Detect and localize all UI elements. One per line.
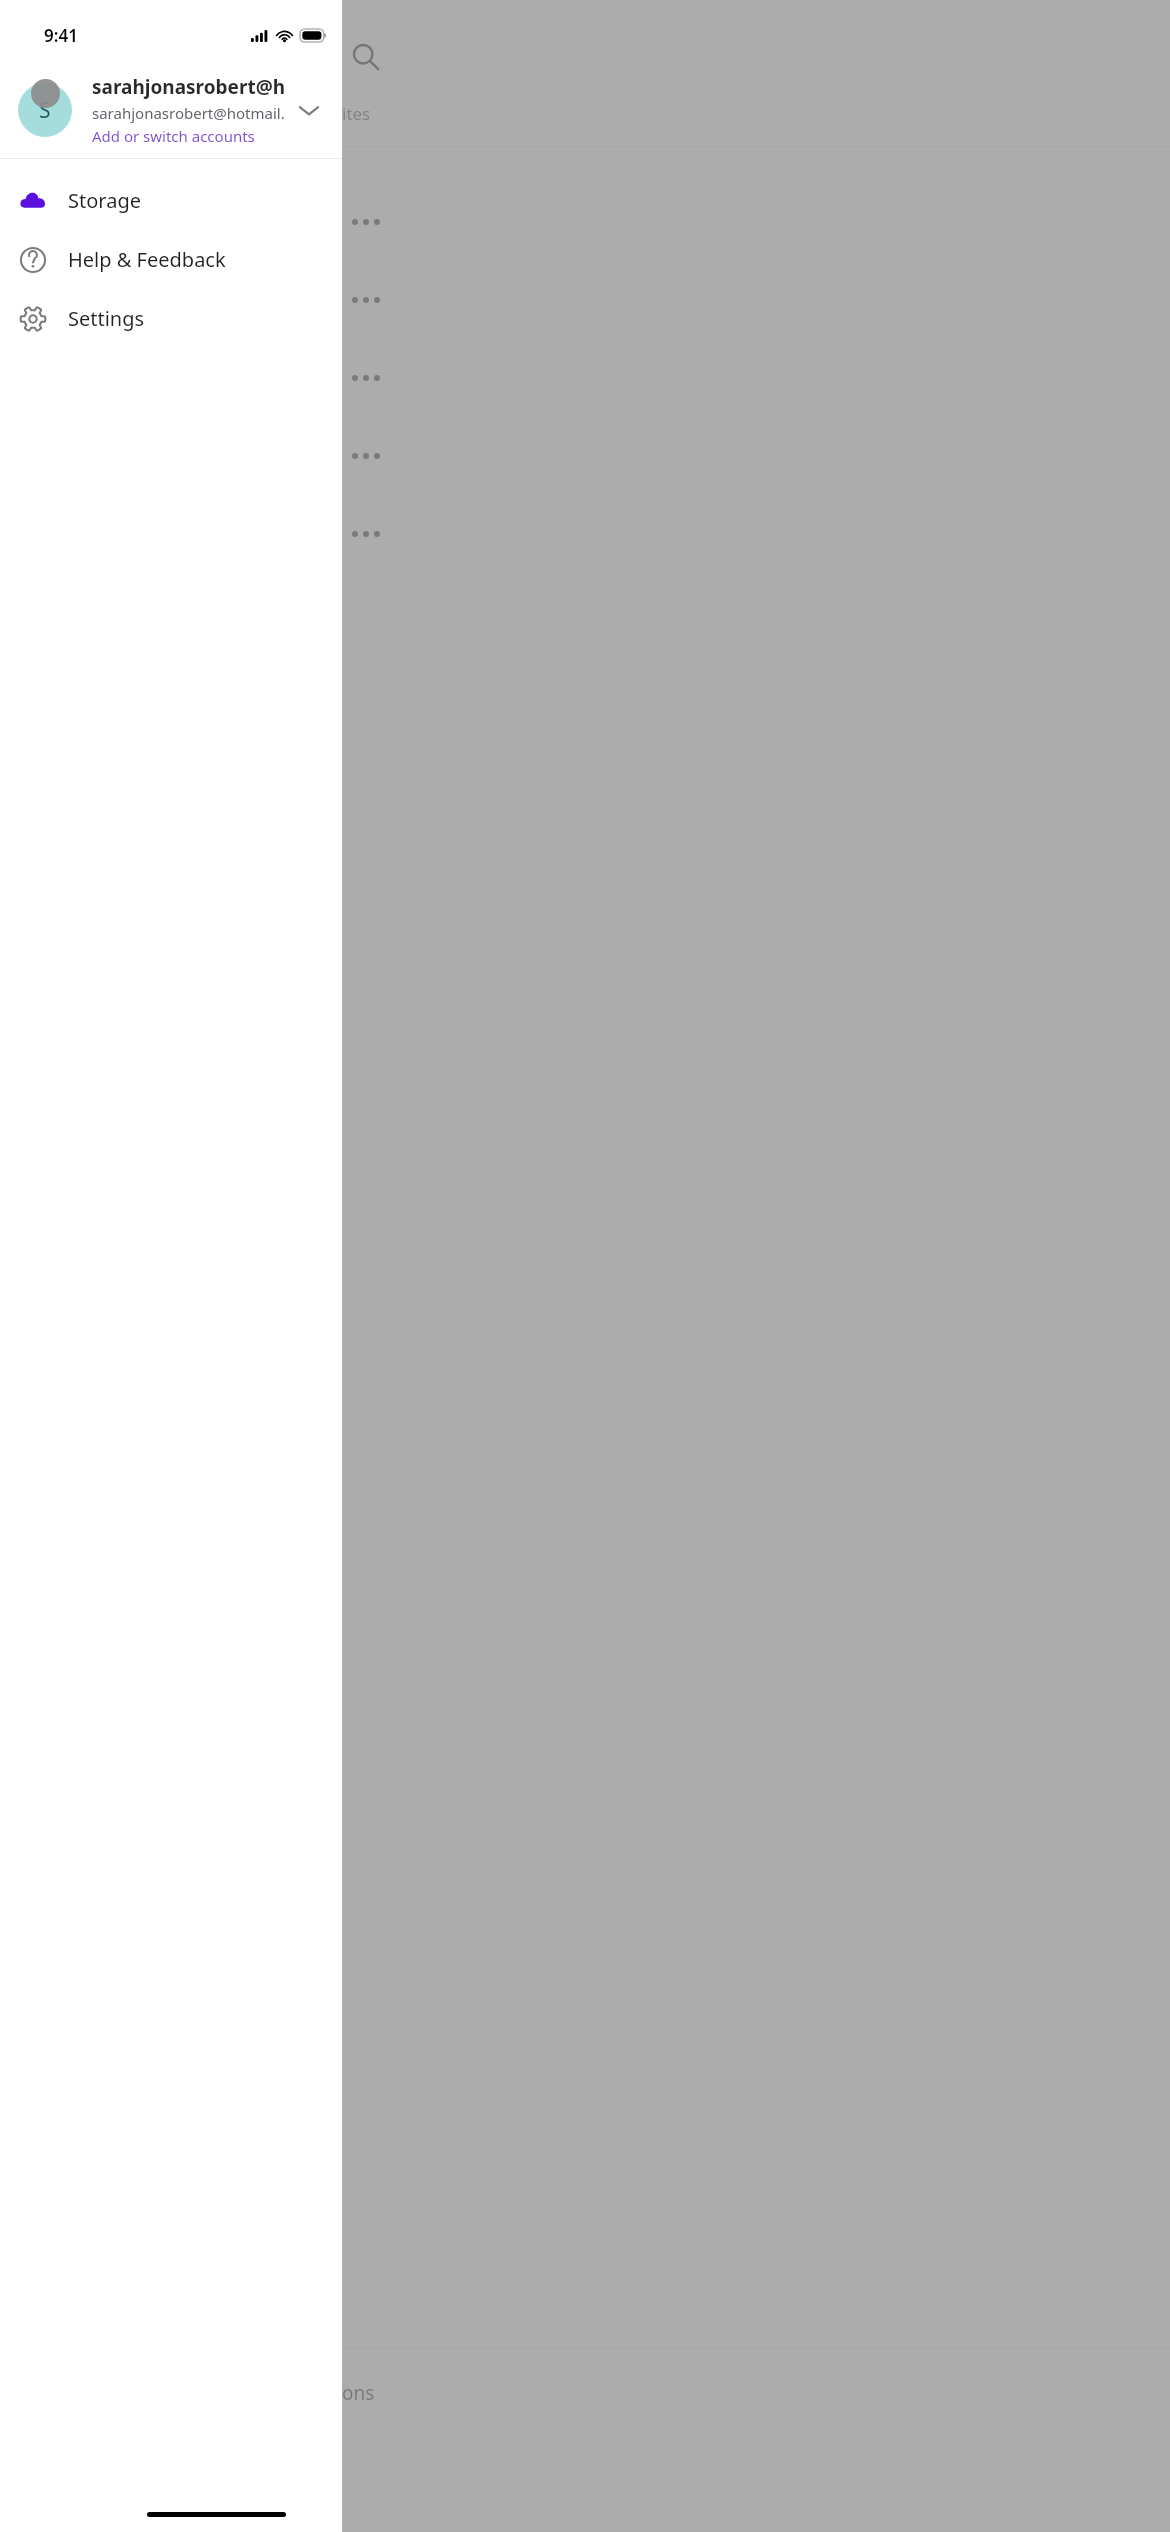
button[interactable]: More options [348,527,384,541]
button[interactable]: More options [348,215,384,229]
button[interactable]: More options [348,371,384,385]
staticText: Help & Feedback [68,246,226,273]
button[interactable]: Expand account list [286,87,332,133]
button[interactable]: Settings [0,289,342,348]
staticText: Settings [68,305,145,332]
staticText: ons [342,2380,375,2406]
button[interactable]: Search [346,37,386,77]
button[interactable]: Storage [0,171,342,230]
button[interactable]: S [0,62,342,158]
button[interactable]: More options [348,293,384,307]
staticText: S [39,96,51,125]
button[interactable]: Help & Feedback [0,230,342,289]
button[interactable]: More options [348,449,384,463]
staticText: Storage [68,187,141,214]
staticText: sarahjonasrobert@hotmail.com [92,103,286,123]
staticText: sarahjonasrobert@hotma… [92,74,286,100]
staticText: ites [342,102,371,125]
button[interactable]: Add or switch accounts [92,126,255,146]
staticText: 9:41 [44,24,78,47]
